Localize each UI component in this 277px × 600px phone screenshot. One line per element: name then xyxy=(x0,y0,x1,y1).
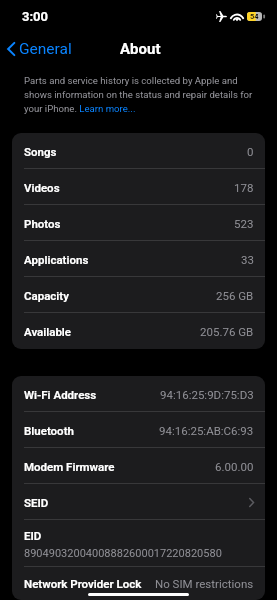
staticText: 178 xyxy=(234,181,254,194)
button[interactable]: Applications xyxy=(12,241,265,277)
staticText: 256 GB xyxy=(216,289,254,302)
staticText: 0 xyxy=(247,145,254,158)
staticText: Songs xyxy=(24,145,57,158)
staticText: No SIM restrictions xyxy=(155,577,254,590)
button[interactable]: Songs xyxy=(12,133,265,169)
button[interactable]: EID xyxy=(12,520,265,567)
staticText: General xyxy=(19,40,72,58)
other: Airplane mode xyxy=(216,11,227,22)
staticText: 205.76 GB xyxy=(200,325,254,338)
button[interactable]: Bluetooth xyxy=(12,412,265,448)
other: Battery 54 percent, Low Power Mode xyxy=(247,12,262,21)
staticText: 523 xyxy=(234,217,254,230)
staticText: SEID xyxy=(24,496,49,509)
staticText: Bluetooth xyxy=(24,424,74,437)
staticText: Videos xyxy=(24,181,60,194)
staticText: Photos xyxy=(24,217,61,230)
button[interactable]: General xyxy=(0,35,80,63)
staticText: Parts and service history is collected b… xyxy=(24,73,259,115)
button[interactable]: Videos xyxy=(12,169,265,205)
button[interactable]: Wi-Fi Address xyxy=(12,376,265,412)
button[interactable]: Network Provider Lock xyxy=(12,567,265,600)
button[interactable]: Modem Firmware xyxy=(12,448,265,484)
staticText: Modem Firmware xyxy=(24,460,115,473)
other: Wi-Fi xyxy=(231,12,243,21)
staticText: Wi-Fi Address xyxy=(24,388,97,401)
staticText: EID xyxy=(24,529,42,542)
staticText: Network Provider Lock xyxy=(24,577,142,590)
staticText: Capacity xyxy=(24,289,69,302)
staticText: Available xyxy=(24,325,72,338)
staticText: Applications xyxy=(24,253,89,266)
staticText: 54 xyxy=(250,12,259,21)
button[interactable]: Available xyxy=(12,313,265,349)
staticText: 6.00.00 xyxy=(215,460,254,473)
button[interactable]: SEID xyxy=(12,484,265,520)
staticText: 33 xyxy=(241,253,254,266)
staticText: 3:00 xyxy=(22,9,49,24)
staticText: 89049032004008882600017220820580 xyxy=(24,547,222,560)
button[interactable]: Photos xyxy=(12,205,265,241)
button[interactable]: Capacity xyxy=(12,277,265,313)
staticText: About xyxy=(120,40,161,58)
staticText: 94:16:25:AB:C6:93 xyxy=(159,424,254,437)
staticText: 94:16:25:9D:75:D3 xyxy=(160,388,254,401)
